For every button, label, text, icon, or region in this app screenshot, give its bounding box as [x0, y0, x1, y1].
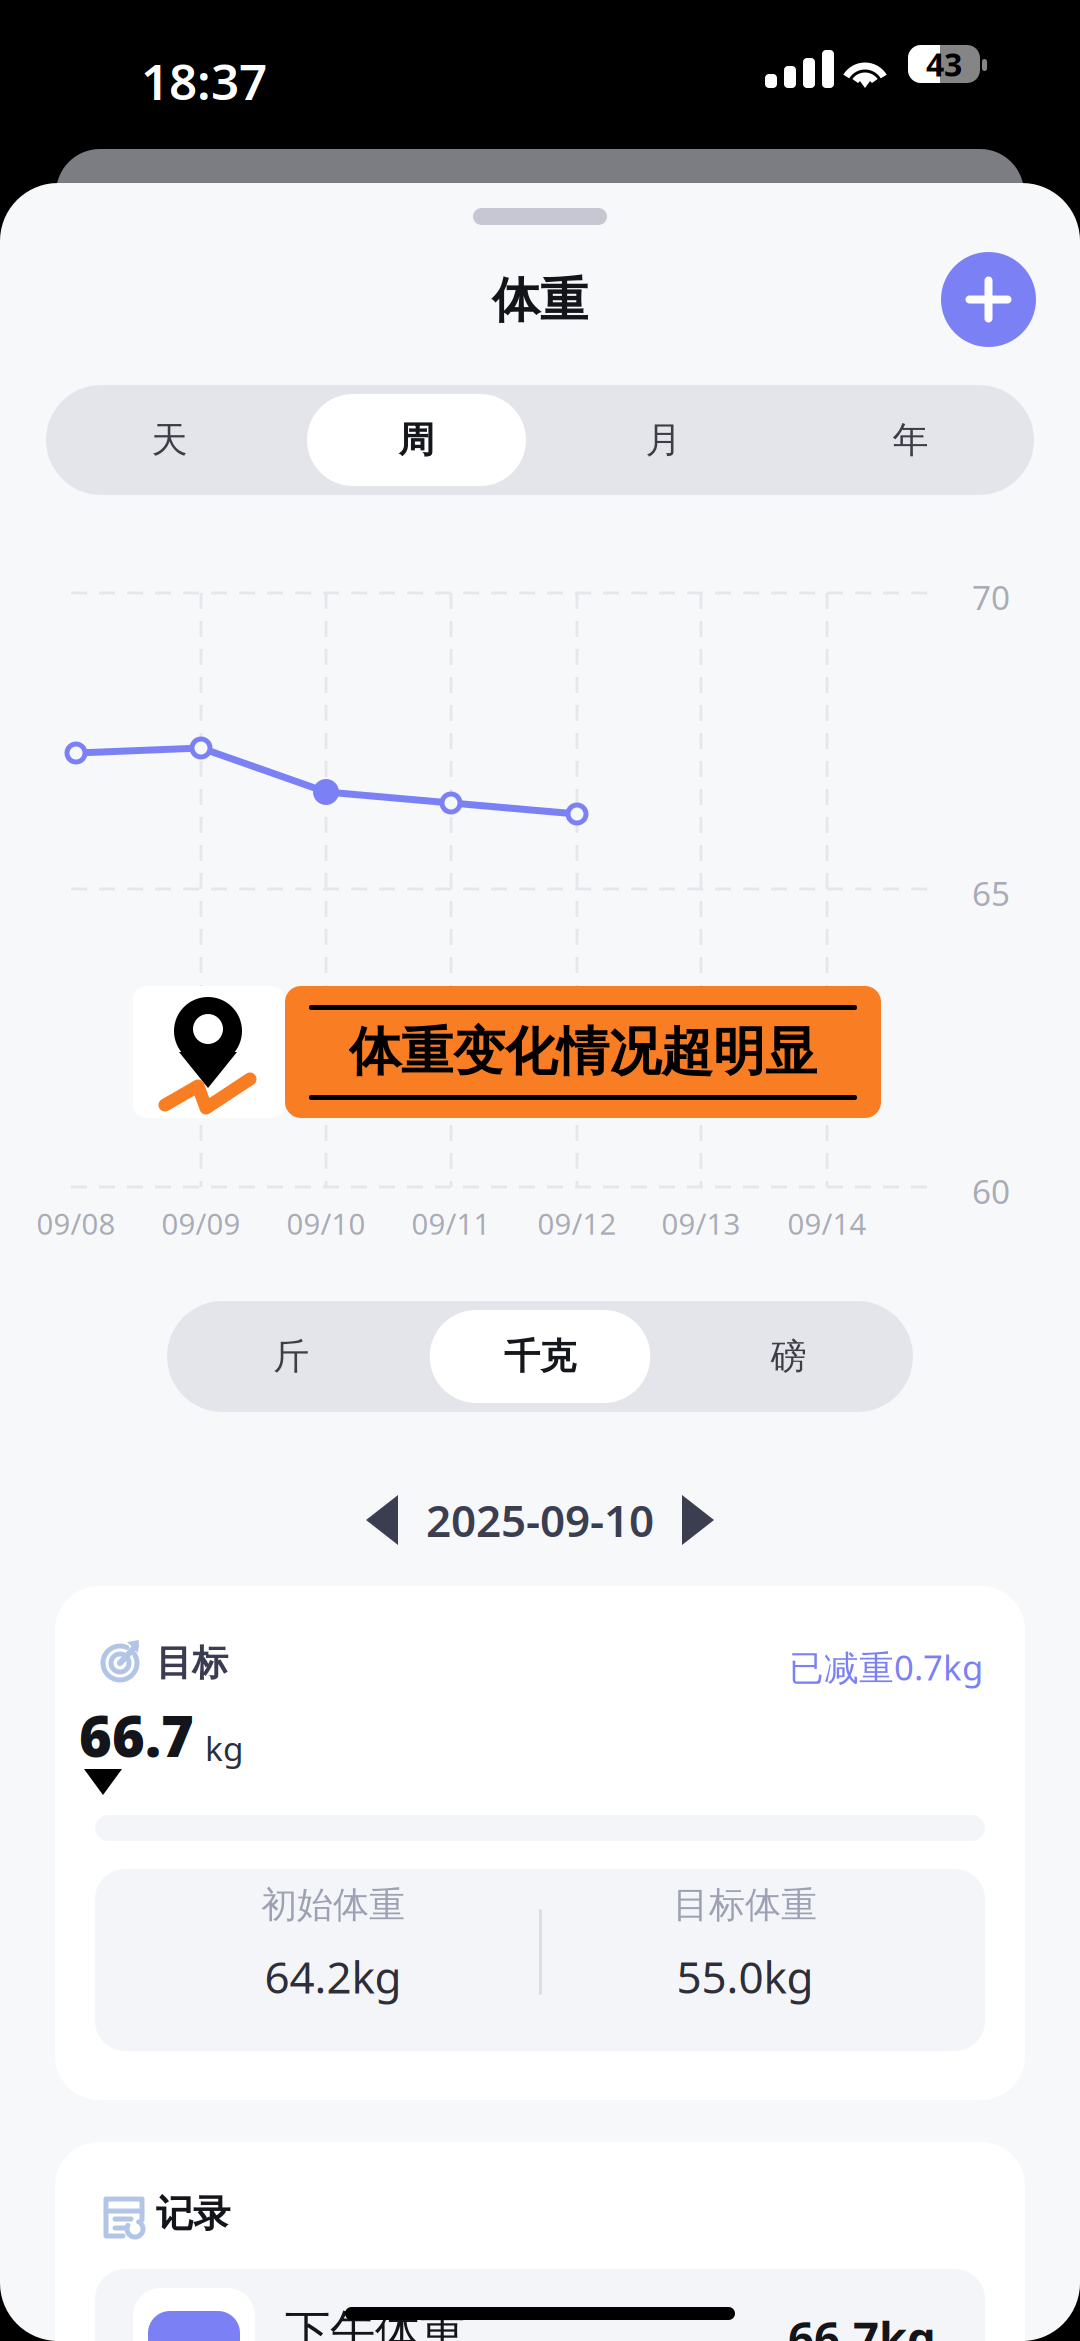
- button[interactable]: 天: [46, 385, 293, 495]
- staticText: 目标: [156, 1641, 228, 1685]
- staticText: 09/10: [286, 1204, 365, 1243]
- staticText: kg: [205, 1726, 244, 1770]
- staticText: 周: [398, 418, 434, 462]
- staticText: 60: [972, 1169, 1010, 1213]
- staticText: 09/09: [161, 1204, 240, 1243]
- staticText: 09/11: [411, 1204, 490, 1243]
- staticText: 18:37: [141, 48, 267, 113]
- staticText: 65: [972, 871, 1010, 915]
- staticText: 磅: [771, 1334, 807, 1379]
- staticText: 下午体重: [285, 2304, 465, 2341]
- staticText: 09/13: [661, 1204, 740, 1243]
- staticText: 43: [926, 43, 962, 85]
- staticText: 55.0kg: [676, 1947, 813, 2006]
- staticText: 2025-09-10: [426, 1491, 654, 1549]
- button[interactable]: 千克: [416, 1301, 664, 1412]
- button[interactable]: 斤: [167, 1301, 416, 1412]
- staticText: 70: [972, 575, 1010, 619]
- staticText: 初始体重: [261, 1883, 405, 1927]
- staticText: 09/12: [537, 1204, 616, 1243]
- staticText: 64.2kg: [264, 1947, 401, 2006]
- button[interactable]: Add weight entry: [941, 252, 1036, 347]
- staticText: 体重变化情况超明显: [349, 1020, 817, 1084]
- button[interactable]: Previous day: [366, 1493, 400, 1547]
- staticText: 目标体重: [673, 1883, 817, 1927]
- button[interactable]: Next day: [680, 1493, 714, 1547]
- staticText: 千克: [504, 1334, 576, 1379]
- staticText: 已减重0.7kg: [789, 1644, 983, 1690]
- staticText: 记录: [156, 2191, 230, 2237]
- button[interactable]: 年: [787, 385, 1034, 495]
- button[interactable]: 周: [293, 385, 540, 495]
- staticText: 09/08: [36, 1204, 115, 1243]
- staticText: 体重: [492, 271, 588, 330]
- staticText: 天: [151, 418, 187, 462]
- staticText: 斤: [273, 1334, 309, 1379]
- button[interactable]: 磅: [664, 1301, 913, 1412]
- staticText: 年: [892, 418, 928, 462]
- staticText: 09/14: [787, 1204, 866, 1243]
- staticText: 66.7: [79, 1698, 194, 1772]
- staticText: 月: [645, 418, 681, 462]
- button[interactable]: 月: [540, 385, 787, 495]
- staticText: 66.7kg: [788, 2307, 936, 2341]
